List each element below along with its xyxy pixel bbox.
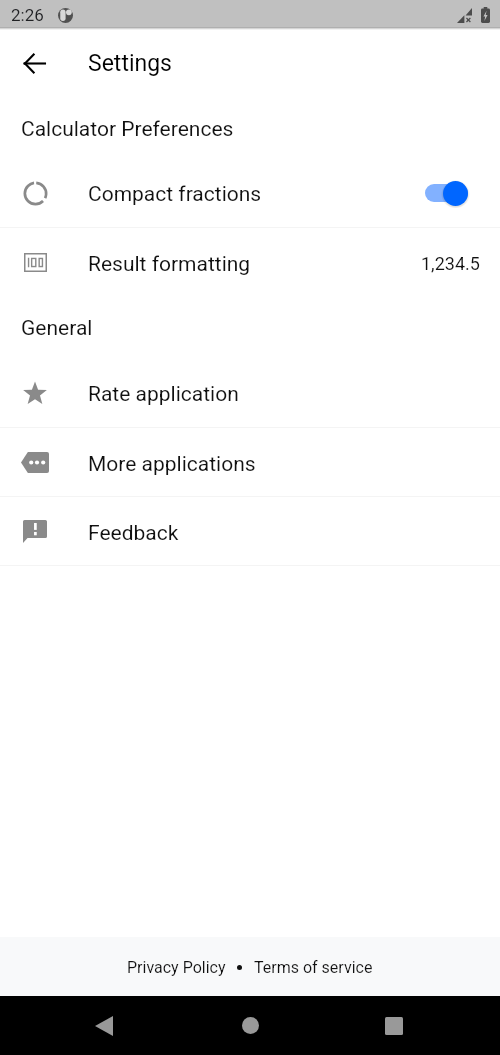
staticText: Compact fractions [88, 182, 262, 207]
button[interactable]: Privacy Policy [127, 958, 226, 977]
button[interactable]: Rate application [0, 358, 500, 427]
button[interactable]: Terms of service [254, 958, 373, 977]
staticText: Rate application [88, 382, 239, 407]
staticText: Settings [88, 50, 172, 77]
button[interactable]: Feedback [0, 497, 500, 565]
staticText: Privacy Policy [127, 958, 226, 977]
staticText: Terms of service [254, 958, 373, 977]
button[interactable]: Back [76, 996, 132, 1055]
staticText: Result formatting [88, 252, 251, 277]
button[interactable]: More applications [0, 428, 500, 496]
button[interactable]: Recent apps [366, 996, 422, 1055]
staticText: Feedback [88, 521, 179, 546]
staticText: 2:26 [11, 5, 44, 25]
staticText: 1,234.5 [421, 253, 480, 274]
button[interactable]: Home [222, 996, 278, 1055]
button[interactable]: Result formatting [0, 228, 500, 296]
staticText: Calculator Preferences [21, 117, 234, 142]
button[interactable]: Compact fractions toggle [425, 176, 480, 210]
button[interactable]: Back [6, 35, 62, 91]
button[interactable]: Compact fractions [0, 158, 500, 227]
staticText: More applications [88, 452, 256, 477]
staticText: General [21, 316, 93, 341]
